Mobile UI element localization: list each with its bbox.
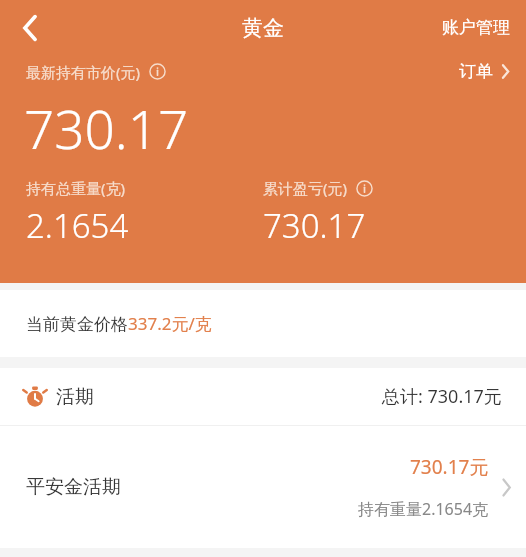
staticText: 累计盈亏(元) [263, 178, 348, 198]
staticText: 订单 [459, 61, 493, 82]
staticText: 平安金活期 [26, 475, 121, 499]
staticText: 活期 [56, 385, 94, 409]
staticText: 黄金 [242, 15, 284, 41]
staticText: 持有重量2.1654克 [358, 498, 489, 520]
staticText: 账户管理 [442, 17, 510, 38]
staticText: 730.17 [24, 92, 189, 164]
button[interactable]: Back [8, 6, 52, 50]
button[interactable]: 账户管理 [426, 5, 526, 50]
staticText: 730.17 [263, 203, 366, 248]
button[interactable]: 当前黄金价格337.2元/克 [0, 290, 526, 357]
staticText: 2.1654 [26, 203, 129, 248]
button[interactable]: 订单 [459, 55, 510, 88]
staticText: 730.17元 [410, 454, 489, 480]
staticText: 最新持有市价(元) [26, 62, 141, 82]
staticText: 当前黄金价格337.2元/克 [26, 312, 212, 335]
staticText: 总计: 730.17元 [382, 384, 502, 409]
button[interactable]: 平安金活期 [0, 426, 526, 548]
staticText: 持有总重量(克) [26, 178, 126, 198]
